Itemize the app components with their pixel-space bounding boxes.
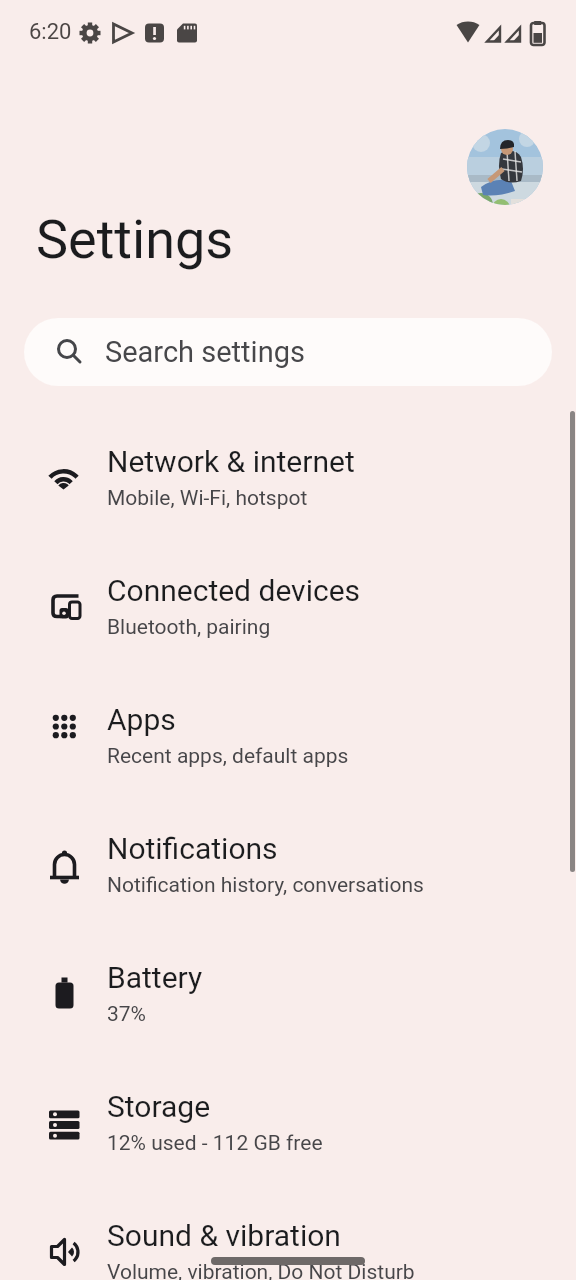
button[interactable]: Battery (0, 929, 576, 1058)
staticText: 6:20 (29, 19, 72, 45)
button[interactable]: Apps (0, 671, 576, 800)
staticText: Storage (107, 1089, 211, 1124)
staticText: Settings (36, 208, 234, 271)
staticText: Recent apps, default apps (107, 744, 349, 769)
staticText: 37% (107, 1002, 146, 1027)
staticText: Network & internet (107, 444, 355, 479)
button[interactable] (467, 129, 543, 205)
button[interactable]: Search settings (24, 318, 552, 386)
staticText: Connected devices (107, 573, 361, 608)
staticText: 12% used - 112 GB free (107, 1131, 323, 1156)
staticText: Search settings (105, 335, 305, 369)
staticText: Mobile, Wi-Fi, hotspot (107, 486, 308, 511)
button[interactable]: Connected devices (0, 542, 576, 671)
staticText: Bluetooth, pairing (107, 615, 271, 640)
button[interactable]: Network & internet (0, 413, 576, 542)
button[interactable]: Storage (0, 1058, 576, 1187)
staticText: Notifications (107, 831, 278, 866)
staticText: Apps (107, 702, 176, 737)
staticText: Notification history, conversations (107, 873, 424, 898)
staticText: Volume, vibration, Do Not Disturb (107, 1260, 415, 1280)
button[interactable]: Sound & vibration (0, 1187, 576, 1280)
staticText: Battery (107, 960, 203, 995)
button[interactable]: Notifications (0, 800, 576, 929)
staticText: Sound & vibration (107, 1218, 341, 1253)
